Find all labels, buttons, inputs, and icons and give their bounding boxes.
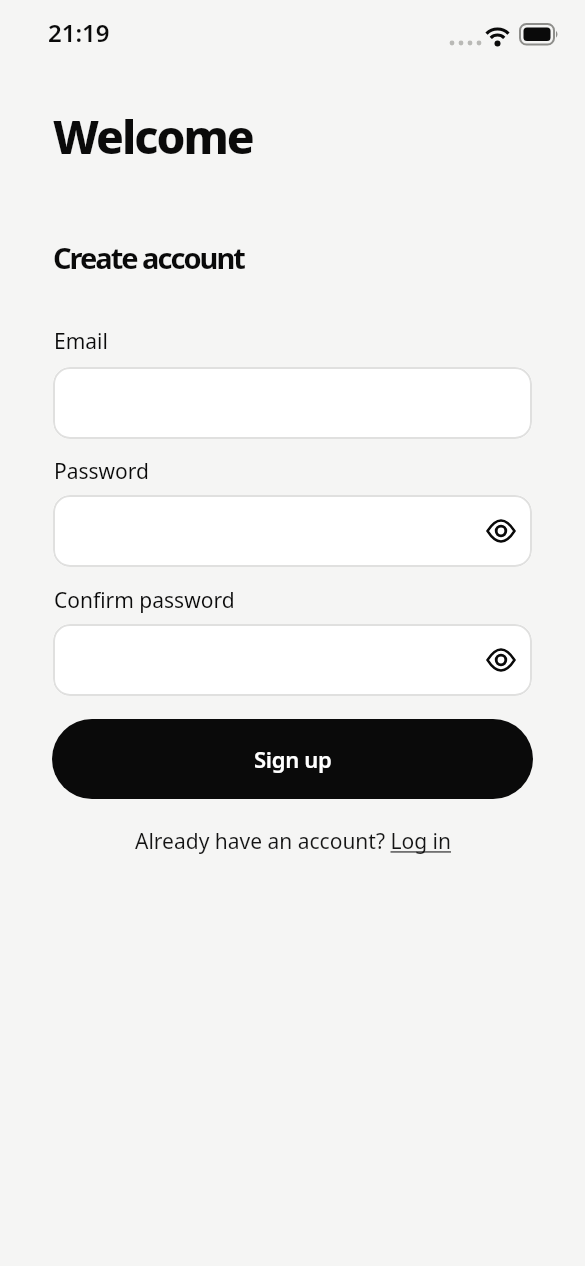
staticText: 21:19: [48, 16, 110, 49]
staticText: Confirm password: [54, 586, 235, 615]
staticText: Password: [54, 457, 149, 486]
button[interactable]: Sign up: [52, 719, 533, 799]
staticText: Welcome: [53, 105, 253, 168]
button[interactable]: [53, 367, 532, 439]
button[interactable]: [53, 624, 532, 696]
button[interactable]: [53, 495, 532, 567]
staticText: Create account: [53, 238, 244, 277]
staticText: Email: [54, 327, 108, 356]
button[interactable]: Already have an account? Log in: [135, 827, 451, 856]
staticText: Sign up: [254, 744, 332, 774]
button[interactable]: [487, 648, 515, 672]
button[interactable]: [487, 519, 515, 543]
